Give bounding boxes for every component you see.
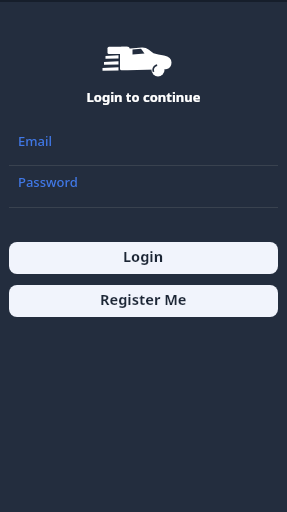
button[interactable]: Register Me [9, 285, 278, 317]
staticText: Login [123, 246, 164, 266]
staticText: Login to continue [0, 88, 287, 106]
button[interactable]: Email [0, 126, 287, 166]
staticText: Register Me [100, 289, 187, 309]
button[interactable]: Password [0, 167, 287, 208]
button[interactable]: Login [9, 242, 278, 274]
staticText: Password [18, 173, 78, 191]
staticText: Email [18, 132, 53, 150]
